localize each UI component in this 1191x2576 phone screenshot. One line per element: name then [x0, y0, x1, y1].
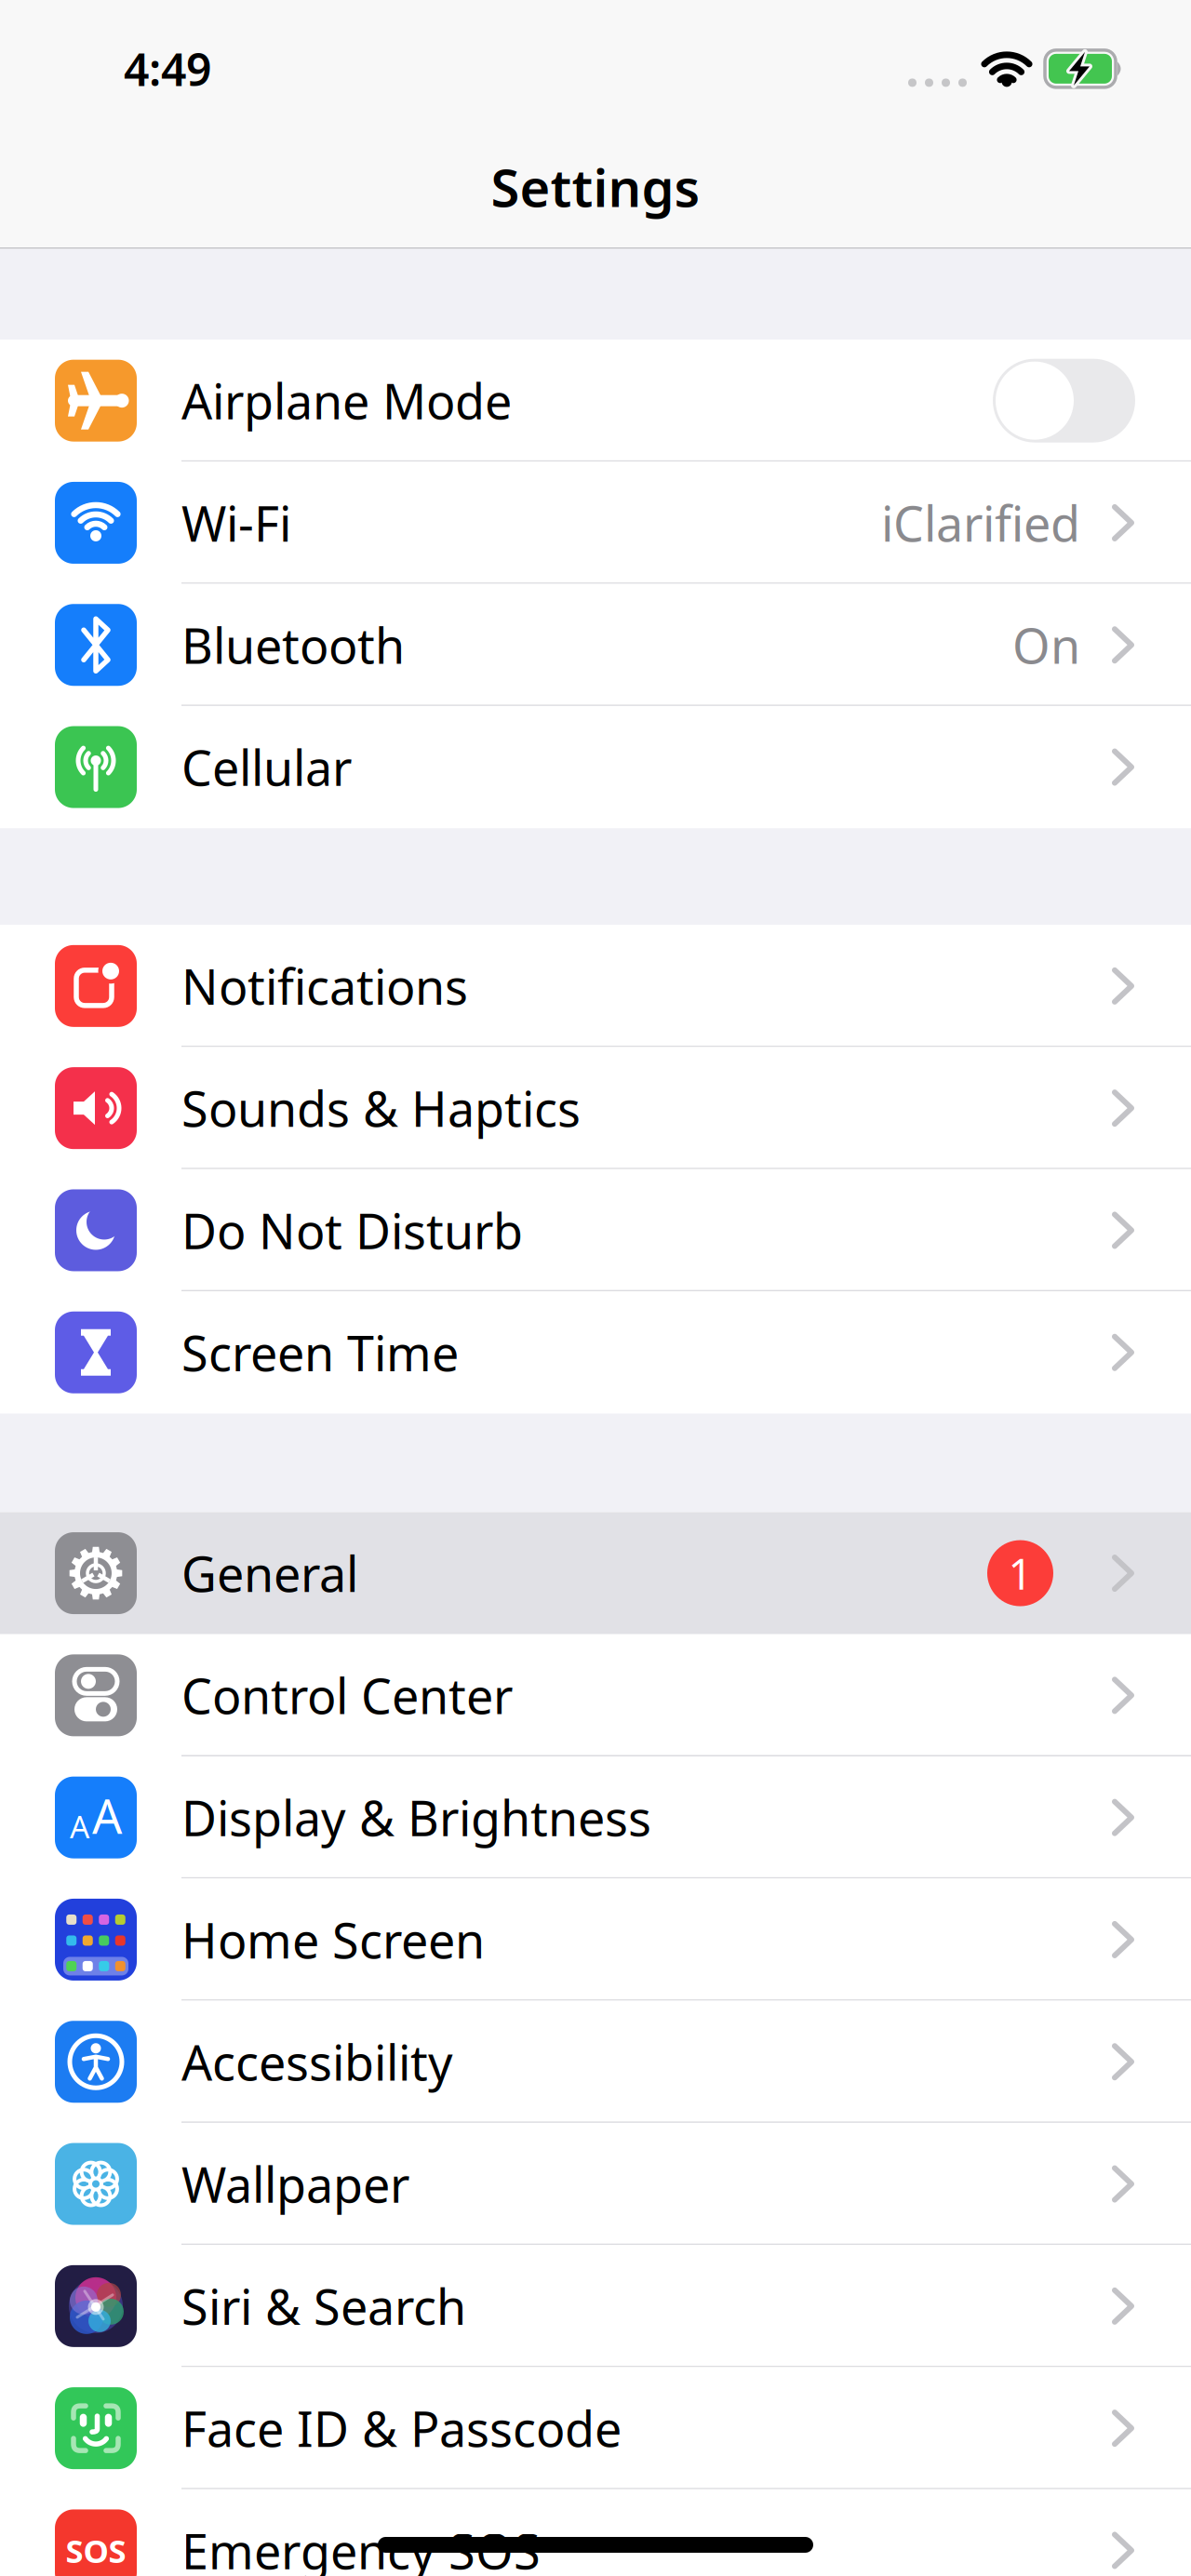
staticText: 4:49 [124, 39, 211, 98]
staticText: Settings [491, 152, 700, 221]
button[interactable]: Accessibility [0, 2001, 1191, 2123]
button[interactable]: Do Not Disturb [0, 1169, 1191, 1291]
button[interactable]: Home Screen [0, 1879, 1191, 2001]
staticText: A [92, 1784, 122, 1847]
staticText: On [1012, 613, 1080, 677]
button[interactable]: Screen Time [0, 1291, 1191, 1413]
button[interactable]: General [0, 1512, 1191, 1634]
staticText: Face ID & Passcode [181, 2396, 622, 2460]
staticText: General [181, 1541, 358, 1605]
staticText: Sounds & Haptics [181, 1076, 581, 1140]
button[interactable]: Wi-Fi [0, 462, 1191, 584]
staticText: Wallpaper [181, 2152, 409, 2216]
staticText: Cellular [181, 735, 352, 799]
staticText: Bluetooth [181, 613, 405, 677]
button[interactable]: Control Center [0, 1634, 1191, 1756]
button[interactable]: Cellular [0, 706, 1191, 828]
staticText: Do Not Disturb [181, 1198, 523, 1262]
button[interactable]: Bluetooth [0, 584, 1191, 706]
staticText: iClarified [881, 491, 1080, 555]
staticText: 1 [1008, 1545, 1032, 1601]
staticText: Emergency SOS [181, 2518, 541, 2576]
staticText: A [70, 1806, 89, 1847]
staticText: Notifications [181, 954, 468, 1018]
staticText: SOS [66, 2529, 126, 2572]
staticText: Siri & Search [181, 2274, 466, 2338]
staticText: Wi-Fi [181, 491, 291, 555]
button[interactable]: SOS [0, 2489, 1191, 2576]
button[interactable]: Siri & Search [0, 2245, 1191, 2367]
button[interactable]: Sounds & Haptics [0, 1047, 1191, 1169]
staticText: Home Screen [181, 1907, 485, 1972]
button[interactable]: Notifications [0, 925, 1191, 1047]
staticText: Display & Brightness [181, 1785, 651, 1850]
staticText: Screen Time [181, 1320, 459, 1385]
staticText: Airplane Mode [181, 368, 512, 433]
button[interactable]: Face ID & Passcode [0, 2367, 1191, 2489]
button[interactable]: Wallpaper [0, 2123, 1191, 2245]
staticText: Accessibility [181, 2030, 453, 2094]
button[interactable]: A [0, 1756, 1191, 1879]
staticText: Control Center [181, 1663, 513, 1727]
button[interactable]: Airplane Mode [993, 359, 1135, 442]
